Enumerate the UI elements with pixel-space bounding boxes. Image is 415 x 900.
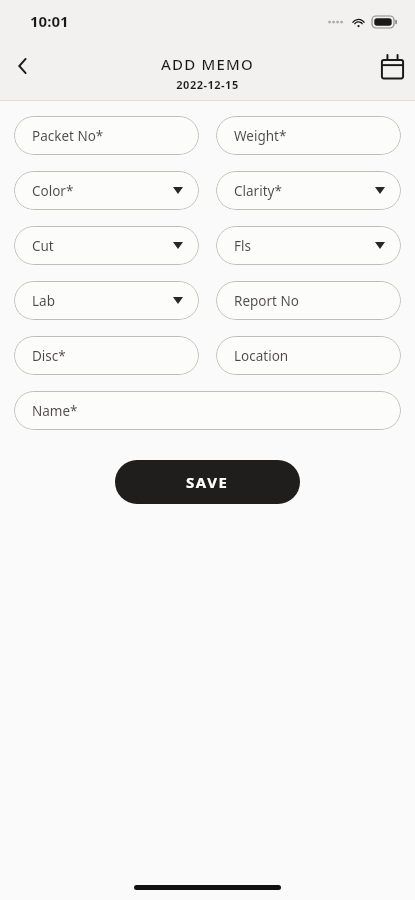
staticText: Clarity* bbox=[234, 182, 282, 200]
button[interactable]: Report No bbox=[216, 281, 401, 320]
button[interactable]: Weight* bbox=[216, 116, 401, 155]
button[interactable]: Location bbox=[216, 336, 401, 375]
staticText: Fls bbox=[234, 237, 251, 255]
staticText: 2022-12-15 bbox=[176, 77, 239, 92]
button[interactable]: Back bbox=[0, 43, 46, 89]
staticText: Location bbox=[234, 347, 289, 365]
button[interactable]: Color* bbox=[14, 171, 199, 210]
staticText: Lab bbox=[32, 292, 55, 310]
staticText: Name* bbox=[32, 402, 78, 420]
button[interactable]: ADD MEMO bbox=[161, 54, 254, 92]
button[interactable]: Disc* bbox=[14, 336, 199, 375]
button[interactable]: Clarity* bbox=[216, 171, 401, 210]
staticText: Color* bbox=[32, 182, 74, 200]
staticText: SAVE bbox=[186, 472, 229, 492]
button[interactable]: Pick date bbox=[369, 43, 415, 89]
button[interactable]: Name* bbox=[14, 391, 401, 430]
staticText: 10:01 bbox=[30, 11, 69, 31]
staticText: ADD MEMO bbox=[161, 54, 254, 74]
button[interactable]: Fls bbox=[216, 226, 401, 265]
button[interactable]: Cut bbox=[14, 226, 199, 265]
staticText: Cut bbox=[32, 237, 54, 255]
staticText: Disc* bbox=[32, 347, 66, 365]
button[interactable]: Packet No* bbox=[14, 116, 199, 155]
staticText: Packet No* bbox=[32, 127, 104, 145]
button[interactable]: Lab bbox=[14, 281, 199, 320]
staticText: Weight* bbox=[234, 127, 287, 145]
button[interactable]: SAVE bbox=[115, 460, 300, 504]
staticText: Report No bbox=[234, 292, 299, 310]
